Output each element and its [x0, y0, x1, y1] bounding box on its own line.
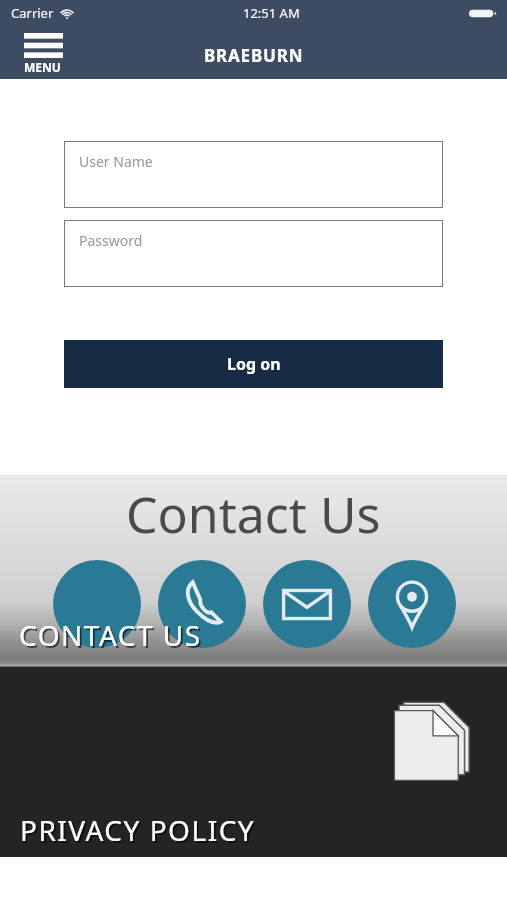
staticText: Contact Us: [126, 480, 381, 548]
button[interactable]: Log on: [64, 340, 443, 388]
button[interactable]: Phone: [158, 560, 246, 648]
button[interactable]: Email address: [53, 560, 141, 648]
staticText: MENU: [24, 59, 61, 75]
staticText: Password: [79, 231, 143, 250]
staticText: CONTACT US: [21, 618, 204, 656]
staticText: User Name: [79, 152, 153, 171]
staticText: Log on: [227, 353, 281, 375]
button[interactable]: Password: [64, 220, 443, 287]
staticText: 12:51 AM: [243, 4, 300, 22]
button[interactable]: PRIVACY POLICY: [0, 668, 507, 857]
staticText: Carrier: [11, 4, 54, 22]
staticText: PRIVACY POLICY: [20, 811, 256, 849]
button[interactable]: User Name: [64, 141, 443, 208]
staticText: BRAEBURN: [204, 44, 304, 67]
staticText: CONTACT US: [19, 616, 202, 654]
button[interactable]: Message: [263, 560, 351, 648]
button[interactable]: Menu: [24, 33, 63, 75]
staticText: PRIVACY POLICY: [22, 813, 258, 851]
button[interactable]: Location: [368, 560, 456, 648]
button[interactable]: Contact Us: [0, 475, 507, 668]
